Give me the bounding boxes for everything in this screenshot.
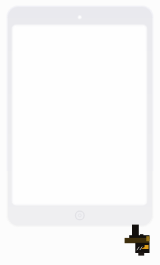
button[interactable]: White iPad mini digitizer touch screen a… xyxy=(0,0,160,265)
